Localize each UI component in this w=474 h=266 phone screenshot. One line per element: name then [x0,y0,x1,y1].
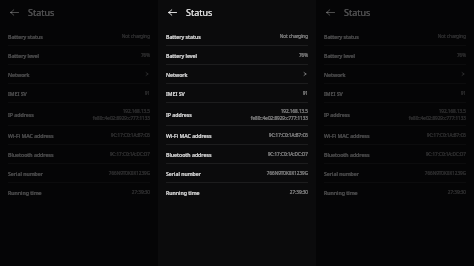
staticText: 766N9T0K0X1239G [424,170,466,176]
button[interactable]: Battery status [0,27,158,45]
staticText: 9C:17:C0:1A:DC:D7 [109,151,150,157]
staticText: IMEI SV [166,90,185,97]
staticText: 27:39:30 [131,189,150,195]
staticText: Bluetooth address [8,151,54,158]
staticText: 9C:17:C0:1A:B7:C6 [268,132,308,138]
staticText: IP address [166,111,192,118]
staticText: 27:39:30 [289,189,308,195]
staticText: Wi-Fi MAC address [324,132,370,139]
button[interactable]: IMEI SV [316,84,474,102]
staticText: 27:39:30 [447,189,466,195]
button[interactable]: Running time [0,183,158,201]
staticText: 192.168.13.5 [438,108,466,114]
staticText: 76% [456,52,466,58]
staticText: Not charging [279,33,308,39]
button[interactable]: Wi-Fi MAC address [316,126,474,144]
staticText: 76% [298,52,308,58]
staticText: 9C:17:C0:1A:DC:D7 [267,151,308,157]
button[interactable]: Battery status [316,27,474,45]
staticText: IMEI SV [324,90,343,97]
staticText: 766N9T0K0X1239G [266,170,308,176]
button[interactable]: Running time [158,183,316,201]
button[interactable]: Serial number [316,164,474,182]
button[interactable]: Network [158,65,316,83]
staticText: 76% [140,52,150,58]
button[interactable]: Battery status [158,27,316,45]
staticText: IP address [324,111,350,118]
staticText: Not charging [437,33,466,39]
staticText: 192.168.13.5 [280,108,308,114]
staticText: IMEI SV [8,90,27,97]
button[interactable]: IP address [316,103,474,125]
staticText: Battery status [324,33,359,40]
button[interactable]: Network [316,65,474,83]
staticText: 9C:17:C0:1A:B7:C6 [426,132,466,138]
button[interactable]: IMEI SV [0,84,158,102]
staticText: Bluetooth address [166,151,212,158]
staticText: Serial number [166,170,201,177]
staticText: 9C:17:C0:1A:DC:D7 [425,151,466,157]
button[interactable]: IP address [158,103,316,125]
staticText: Network [324,71,346,78]
button[interactable]: Running time [316,183,474,201]
staticText: 91 [144,90,150,96]
staticText: Running time [324,189,358,196]
staticText: 766N9T0K0X1239G [108,170,150,176]
staticText: Wi-Fi MAC address [8,132,54,139]
button[interactable]: Battery level [158,46,316,64]
staticText: Battery level [8,52,39,59]
staticText: Wi-Fi MAC address [166,132,212,139]
staticText: Battery level [166,52,197,59]
staticText: Running time [8,189,42,196]
staticText: 192.168.13.5 [122,108,150,114]
staticText: Serial number [8,170,43,177]
button[interactable]: IMEI SV [158,84,316,102]
staticText: Serial number [324,170,359,177]
staticText: Network [8,71,30,78]
button[interactable]: Wi-Fi MAC address [158,126,316,144]
button[interactable]: Bluetooth address [0,145,158,163]
staticText: Status [28,6,55,18]
staticText: Status [186,6,213,18]
button[interactable]: Back [164,4,180,20]
button[interactable]: Battery level [316,46,474,64]
button[interactable]: IP address [0,103,158,125]
staticText: fe80::4e02:8929:c777:1133 [250,115,308,121]
button[interactable]: Serial number [0,164,158,182]
button[interactable]: Wi-Fi MAC address [0,126,158,144]
staticText: 9C:17:C0:1A:B7:C6 [110,132,150,138]
staticText: Battery status [8,33,43,40]
staticText: Network [166,71,188,78]
button[interactable]: Network [0,65,158,83]
staticText: fe80::4e02:8929:c777:1133 [408,115,466,121]
staticText: Not charging [121,33,150,39]
button[interactable]: Back [6,4,22,20]
staticText: Status [344,6,371,18]
button[interactable]: Bluetooth address [158,145,316,163]
staticText: 91 [460,90,466,96]
staticText: Running time [166,189,200,196]
button[interactable]: Serial number [158,164,316,182]
staticText: fe80::4e02:8929:c777:1133 [92,115,150,121]
button[interactable]: Back [322,4,338,20]
staticText: IP address [8,111,34,118]
staticText: Battery level [324,52,355,59]
staticText: Battery status [166,33,201,40]
staticText: 91 [302,90,308,96]
button[interactable]: Battery level [0,46,158,64]
button[interactable]: Bluetooth address [316,145,474,163]
staticText: Bluetooth address [324,151,370,158]
